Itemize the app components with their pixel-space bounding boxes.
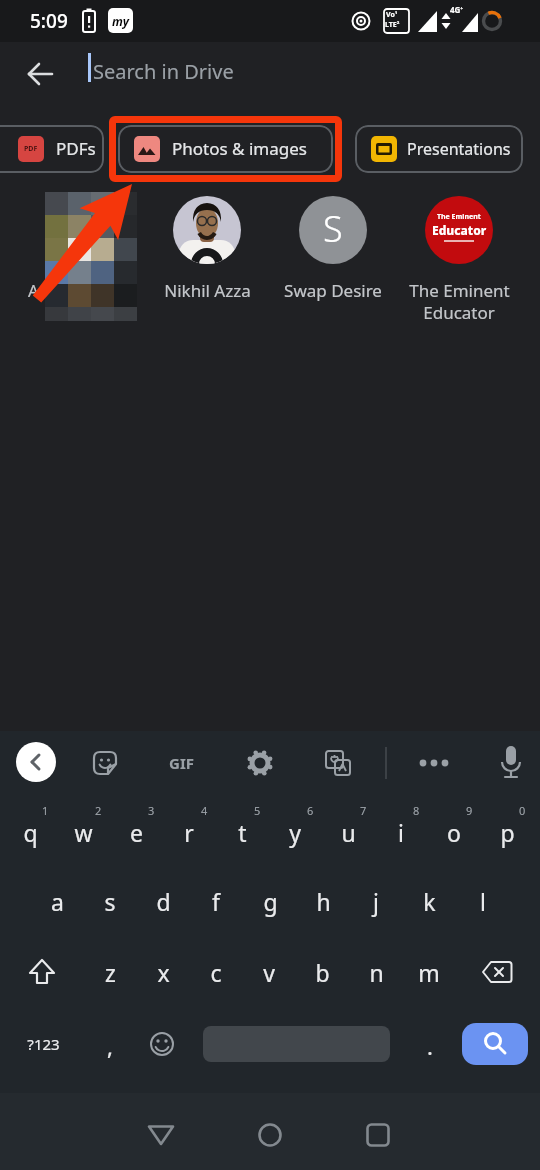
button[interactable] [462,1023,528,1065]
button[interactable] [246,749,274,777]
staticText: my [112,13,130,29]
button[interactable] [139,1113,183,1157]
staticText: f [212,886,220,917]
button[interactable]: Photos & images [118,125,333,173]
button[interactable]: w [58,800,108,864]
staticText: GIF [169,753,194,773]
staticText: b [315,957,330,988]
staticText: a [51,886,64,917]
staticText: m [418,957,440,988]
staticText: Vo¹ [386,10,398,20]
staticText: 8 [413,803,420,818]
staticText: PDF [24,144,38,154]
staticText: Nikhil Azza [164,279,251,302]
staticText: c [210,957,222,988]
button[interactable]: q [5,800,55,864]
staticText: , [107,1031,113,1061]
staticText: u [341,817,356,848]
button[interactable]: l [458,869,508,933]
button[interactable] [91,749,119,777]
button[interactable]: d [138,869,188,933]
staticText: LTE² [385,20,400,30]
button[interactable]: . [408,1018,452,1074]
staticText: . [427,1031,433,1061]
button[interactable]: g [245,869,295,933]
button[interactable]: GIF [151,745,211,781]
staticText: r [184,817,194,848]
staticText: Presentations [407,138,511,160]
staticText: t [238,817,247,848]
staticText: 7 [360,803,367,818]
button[interactable]: The Eminent [415,192,503,322]
staticText: s [104,886,116,917]
staticText: z [105,957,116,988]
button[interactable] [248,1113,292,1157]
button[interactable] [356,1113,400,1157]
button[interactable]: e [111,800,161,864]
staticText: v [263,957,275,988]
button[interactable]: j [351,869,401,933]
button[interactable]: t [217,800,267,864]
staticText: 1 [42,803,49,818]
staticText: w [74,817,93,848]
button[interactable]: h [298,869,348,933]
button[interactable]: n [351,940,401,1004]
button[interactable] [140,1022,184,1066]
staticText: p [500,817,515,848]
button[interactable] [16,742,56,782]
staticText: 9 [466,803,473,818]
button[interactable]: r [164,800,214,864]
staticText: ?123 [27,1034,60,1054]
button[interactable]: k [404,869,454,933]
staticText: q [23,817,38,848]
button[interactable]: b [297,940,347,1004]
button[interactable]: s [85,869,135,933]
button[interactable]: u [323,800,373,864]
button[interactable]: c [191,940,241,1004]
button[interactable]: Presentations [355,125,523,173]
button[interactable]: p [482,800,532,864]
button[interactable]: i [376,800,426,864]
button[interactable] [20,950,64,994]
staticText: 0 [519,803,526,818]
staticText: Search in Drive [93,58,234,85]
staticText: y [289,817,301,848]
button[interactable] [163,192,251,322]
button[interactable]: m [404,940,454,1004]
button[interactable]: PDF [0,125,104,173]
staticText: 3 [148,803,155,818]
button[interactable]: v [244,940,294,1004]
button[interactable]: S [289,192,377,322]
staticText: 6 [307,803,314,818]
staticText: i [398,817,404,848]
staticText: j [373,886,379,917]
staticText: o [447,817,461,848]
button[interactable]: o [429,800,479,864]
button[interactable] [16,50,64,98]
button[interactable]: a [32,869,82,933]
button[interactable] [475,950,519,994]
staticText: The Eminent [437,212,481,222]
button[interactable] [497,745,525,781]
button[interactable]: f [191,869,241,933]
staticText: 4 [201,803,208,818]
button[interactable]: ?123 [8,1016,78,1072]
button[interactable]: y [270,800,320,864]
staticText: S [323,204,343,253]
button[interactable]: z [85,940,135,1004]
staticText: k [423,886,436,917]
staticText: 5:09 [30,8,68,34]
button[interactable] [412,749,456,777]
staticText: 2 [95,803,102,818]
staticText: d [156,886,171,917]
button[interactable] [324,749,352,777]
staticText: 5 [254,803,261,818]
staticText: 4G⁺ [450,4,464,15]
button[interactable]: Search in Drive [80,42,540,106]
staticText: Swap Desire [284,279,382,302]
button[interactable]: , [88,1018,132,1074]
staticText: l [480,886,486,917]
staticText: h [316,886,331,917]
button[interactable]: x [138,940,188,1004]
